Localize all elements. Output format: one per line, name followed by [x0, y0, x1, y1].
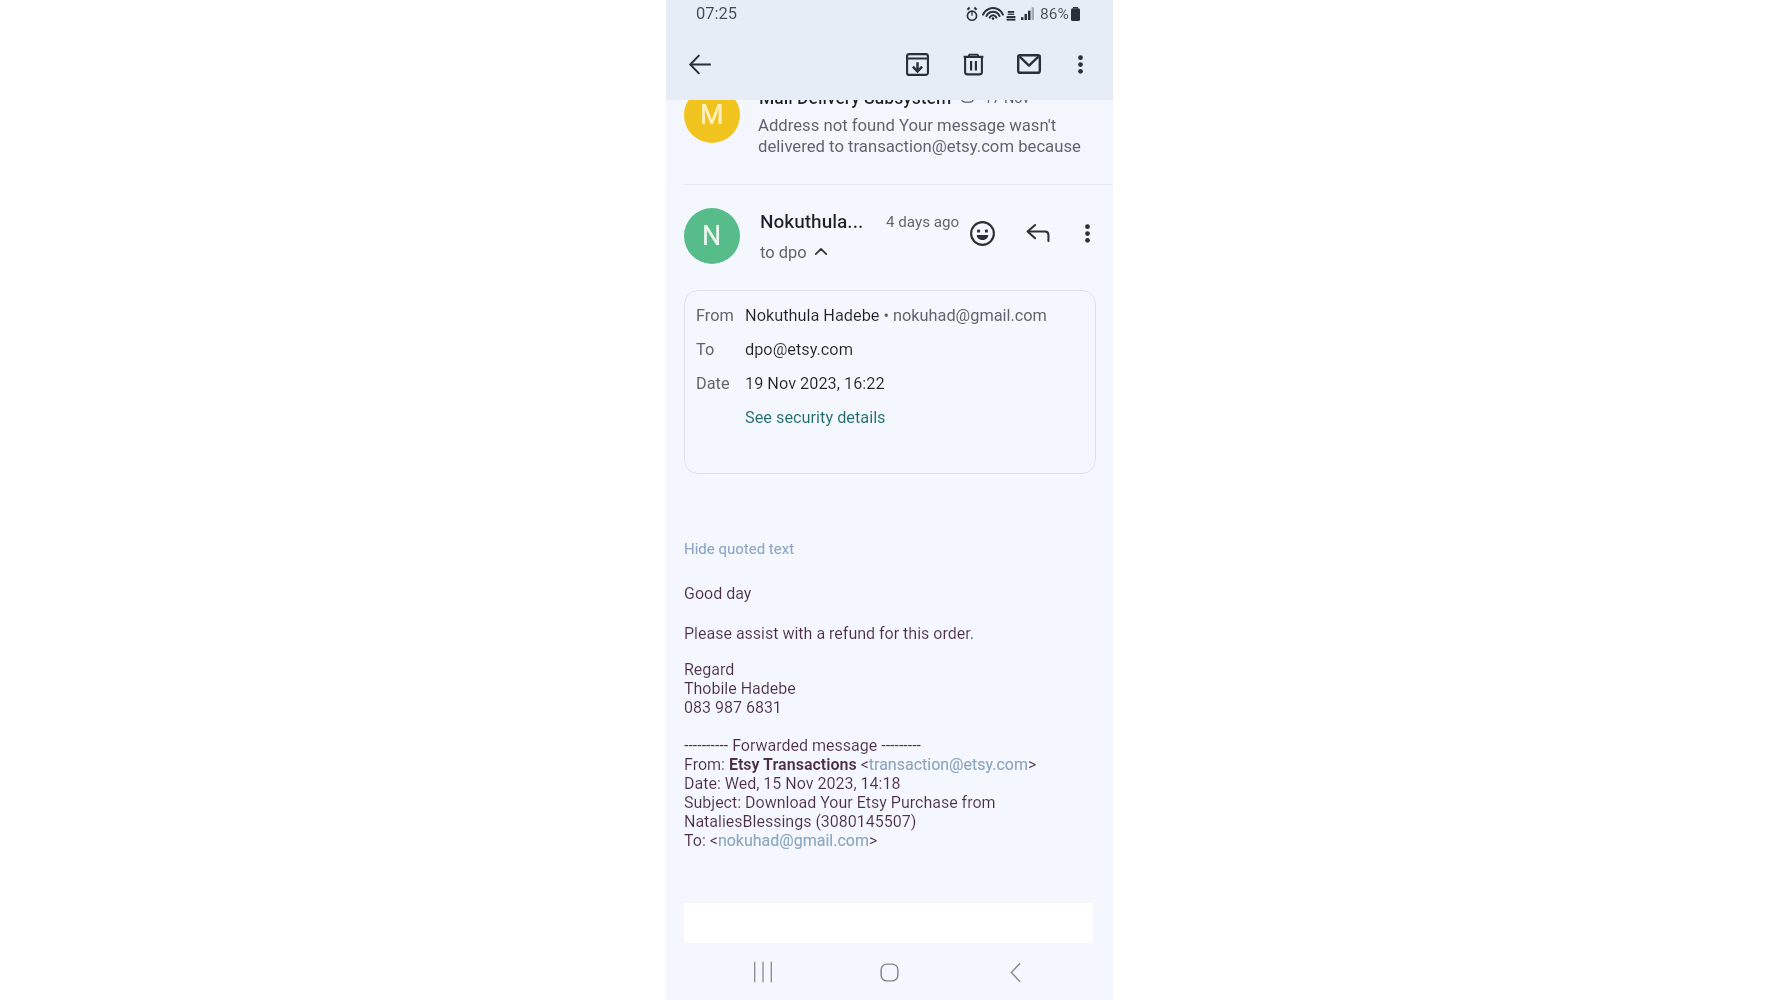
staticText: ---------- Forwarded message --------- F…: [684, 736, 1097, 850]
button[interactable]: M: [666, 100, 1113, 185]
button[interactable]: to dpo: [760, 243, 827, 262]
staticText: Date: [696, 374, 730, 393]
button[interactable]: Home: [866, 949, 912, 995]
staticText: M: [700, 99, 724, 131]
staticText: to dpo: [760, 243, 807, 262]
staticText: 07:25: [696, 4, 738, 23]
staticText: 17 Nov: [984, 90, 1030, 107]
staticText: From: [696, 306, 734, 325]
button[interactable]: React: [961, 212, 1003, 254]
button[interactable]: Recents: [740, 949, 786, 995]
staticText: dpo@etsy.com: [745, 340, 853, 359]
staticText: Nokuthula...: [760, 210, 864, 232]
staticText: Mail Delivery Subsystem: [759, 88, 952, 109]
staticText: Good day: [684, 584, 752, 603]
button[interactable]: Mark as unread: [1005, 40, 1053, 88]
button[interactable]: Hide quoted text: [684, 540, 795, 558]
staticText: Nokuthula Hadebe • nokuhad@gmail.com: [745, 306, 1047, 325]
staticText: N: [702, 220, 722, 252]
button[interactable]: Archive: [893, 40, 941, 88]
button[interactable]: More options: [1068, 214, 1106, 252]
button[interactable]: More options: [1058, 42, 1102, 86]
button[interactable]: Reply: [1017, 212, 1059, 254]
staticText: To: [696, 340, 715, 359]
staticText: Regard Thobile Hadebe 083 987 6831: [684, 660, 796, 717]
button[interactable]: Delete: [949, 40, 997, 88]
staticText: Address not found Your message wasn't de…: [758, 116, 1081, 156]
staticText: 86%: [1040, 5, 1069, 23]
staticText: Please assist with a refund for this ord…: [684, 624, 974, 643]
button[interactable]: Navigate up: [676, 40, 724, 88]
button[interactable]: Back: [992, 949, 1038, 995]
staticText: 19 Nov 2023, 16:22: [745, 374, 885, 393]
button[interactable]: See security details: [745, 408, 886, 427]
staticText: 4 days ago: [886, 213, 960, 231]
